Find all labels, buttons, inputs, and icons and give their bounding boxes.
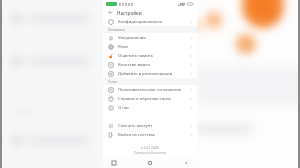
button[interactable]: Конфиденциальность — [103, 17, 197, 26]
button[interactable]: Home — [145, 158, 155, 168]
staticText: Уведомления — [118, 35, 189, 41]
button[interactable]: Back — [181, 158, 191, 168]
staticText: Настройки — [117, 10, 142, 16]
button[interactable]: Сменить аккаунт — [103, 121, 197, 130]
button[interactable]: Уведомления — [103, 33, 197, 42]
staticText: Конфиденциальность — [118, 19, 189, 25]
staticText: Пользовательское соглашение — [118, 87, 189, 93]
button[interactable]: Язык — [103, 42, 197, 51]
button[interactable]: Выйти из системы — [103, 130, 197, 139]
staticText: Качество видео — [118, 62, 189, 68]
staticText: Выйти из системы — [118, 132, 189, 138]
staticText: Язык — [118, 44, 189, 50]
button[interactable]: Пользовательское соглашение — [103, 85, 197, 94]
button[interactable]: Добавить в рекомендации — [103, 69, 197, 78]
staticText: Справка и обратная связь — [118, 96, 189, 102]
staticText: v 2.4.1 (549) — [141, 146, 159, 150]
staticText: Очистить память — [118, 53, 189, 59]
button[interactable]: Качество видео — [103, 60, 197, 69]
staticText: О нас — [118, 105, 189, 111]
staticText: Проверить обновления — [134, 151, 167, 155]
staticText: О нас — [108, 79, 118, 84]
button[interactable]: Очистить память — [103, 51, 197, 60]
other: Back — [108, 10, 113, 15]
staticText: Основные — [108, 27, 125, 32]
button[interactable]: О нас — [103, 103, 197, 112]
button[interactable]: Recents — [109, 158, 119, 168]
staticText: Сменить аккаунт — [118, 123, 189, 129]
staticText: Добавить в рекомендации — [118, 71, 189, 77]
button[interactable]: Справка и обратная связь — [103, 94, 197, 103]
button[interactable]: Back — [103, 8, 197, 17]
